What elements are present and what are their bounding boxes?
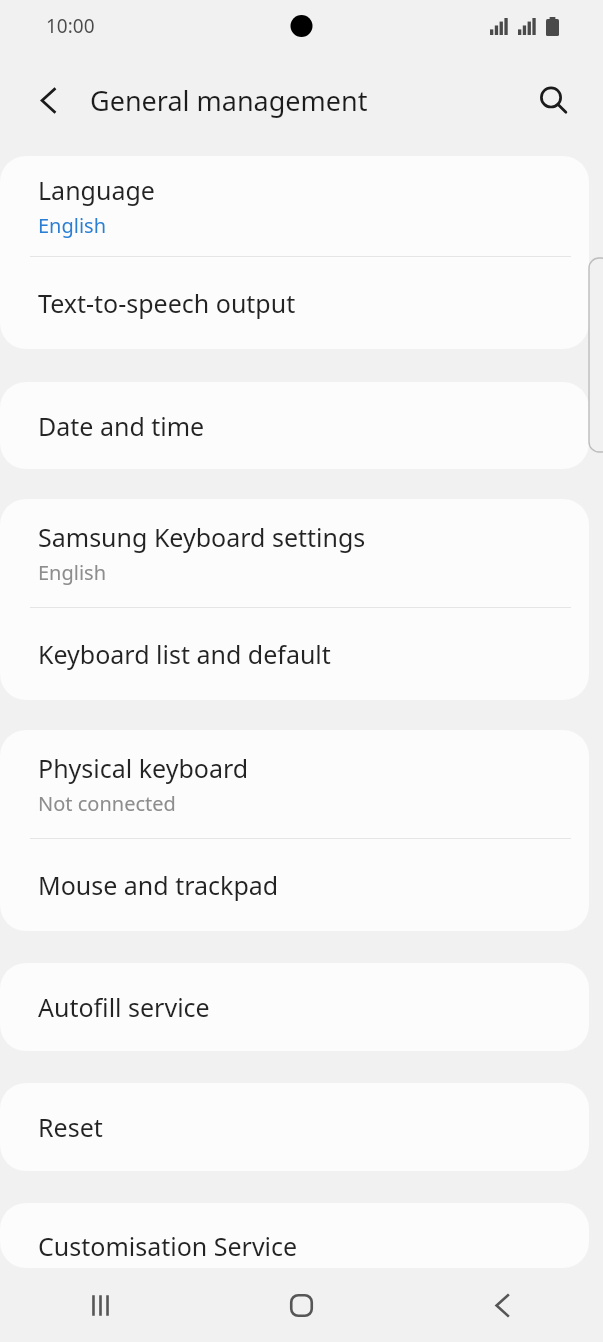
staticText: Autofill service: [38, 990, 210, 1024]
staticText: English: [38, 212, 107, 239]
staticText: Reset: [38, 1110, 103, 1144]
staticText: English: [38, 559, 107, 586]
button[interactable]: Back: [402, 1268, 603, 1342]
staticText: Language: [38, 173, 155, 207]
staticText: Not connected: [38, 790, 176, 817]
staticText: Customisation Service: [38, 1229, 298, 1263]
button[interactable]: Language: [0, 156, 589, 256]
button[interactable]: Customisation Service: [0, 1203, 589, 1268]
button[interactable]: Search: [527, 74, 579, 126]
button[interactable]: Physical keyboard: [0, 730, 589, 838]
button[interactable]: Keyboard list and default: [0, 608, 589, 700]
button[interactable]: Back: [22, 74, 74, 126]
staticText: 10:00: [46, 13, 95, 39]
button[interactable]: Autofill service: [0, 963, 589, 1051]
button[interactable]: Date and time: [0, 382, 589, 469]
staticText: Samsung Keyboard settings: [38, 520, 366, 554]
staticText: Date and time: [38, 409, 205, 443]
button[interactable]: Home: [201, 1268, 402, 1342]
staticText: Keyboard list and default: [38, 637, 331, 671]
staticText: Mouse and trackpad: [38, 868, 279, 902]
staticText: Text-to-speech output: [38, 286, 296, 320]
button[interactable]: Text-to-speech output: [0, 257, 589, 349]
button[interactable]: Recent apps: [0, 1268, 201, 1342]
button[interactable]: Samsung Keyboard settings: [0, 499, 589, 607]
button[interactable]: Mouse and trackpad: [0, 839, 589, 931]
button[interactable]: Reset: [0, 1083, 589, 1171]
staticText: General management: [90, 82, 368, 119]
staticText: Physical keyboard: [38, 751, 249, 785]
